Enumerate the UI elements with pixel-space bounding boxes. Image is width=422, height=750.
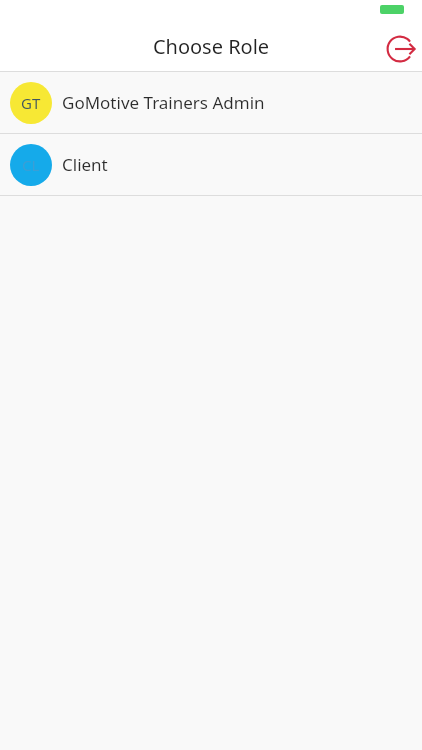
staticText: Choose Role	[0, 33, 422, 60]
staticText: GoMotive Trainers Admin	[62, 91, 265, 114]
button[interactable]: GT	[0, 72, 422, 133]
button[interactable]: CL	[0, 134, 422, 195]
staticText: CL	[22, 155, 40, 175]
button[interactable]: Log out	[378, 27, 422, 71]
staticText: Client	[62, 153, 108, 176]
staticText: GT	[21, 93, 41, 113]
